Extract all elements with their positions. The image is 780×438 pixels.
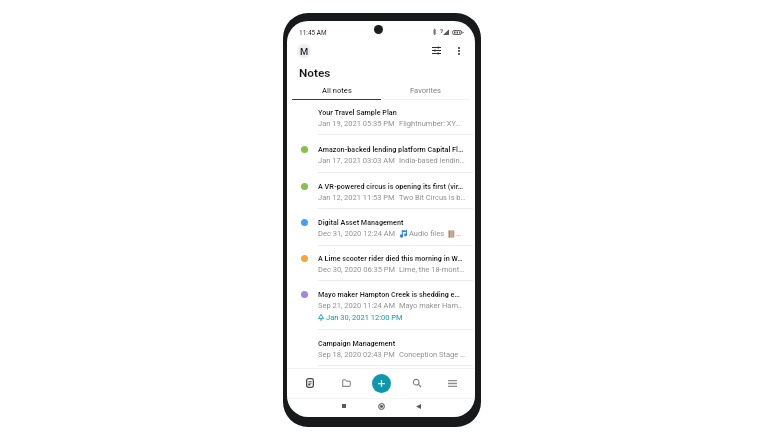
staticText: Dec 31, 2020 12:24 AM	[318, 229, 396, 238]
staticText: Mayo maker Ham…	[399, 301, 463, 310]
staticText: 11:45 AM	[299, 29, 327, 37]
button[interactable]: Favorites	[381, 82, 470, 99]
button[interactable]: Recents	[337, 399, 351, 413]
staticText: Jan 12, 2021 11:53 PM	[318, 193, 395, 202]
staticText: Campaign Management	[318, 339, 465, 347]
button[interactable]: Menu	[444, 375, 460, 391]
staticText: All notes	[322, 86, 352, 95]
button[interactable]: Mayo maker Hampton Creek is shedding e…	[287, 281, 475, 330]
staticText: Sep 21, 2020 11:24 AM	[318, 301, 395, 310]
staticText: Jan 30, 2021 12:00 PM	[326, 313, 403, 322]
staticText: Lime, the 18-mont…	[399, 265, 465, 274]
button[interactable]: Digital Asset Management	[287, 209, 475, 246]
staticText: Flightnumber: XY…	[399, 119, 461, 128]
button[interactable]: Campaign Management	[287, 330, 475, 366]
staticText: Sep 18, 2020 02:43 PM	[318, 350, 395, 359]
staticText: Audio files	[409, 229, 445, 238]
button[interactable]: Home	[374, 399, 388, 413]
staticText: M	[300, 46, 309, 57]
button[interactable]: More options	[451, 43, 467, 59]
staticText: Favorites	[410, 86, 441, 95]
staticText: Notes	[299, 66, 331, 80]
button[interactable]: Add note	[372, 374, 391, 393]
button[interactable]: Search	[409, 375, 425, 391]
button[interactable]: Account	[297, 44, 311, 58]
staticText: Conception Stage …	[399, 350, 465, 359]
staticText: Jan 19, 2021 05:35 PM	[318, 119, 395, 128]
staticText: Two Bit Circus is b…	[399, 193, 465, 202]
button[interactable]: Notes	[302, 375, 318, 391]
staticText: A VR-powered circus is opening its first…	[318, 182, 465, 190]
staticText: India-based lendin…	[399, 156, 465, 165]
button[interactable]: All notes	[292, 82, 381, 99]
staticText: Amazon-backed lending platform Capital F…	[318, 145, 465, 153]
button[interactable]: Folders	[338, 375, 354, 391]
button[interactable]: Back	[411, 399, 425, 413]
button[interactable]: Amazon-backed lending platform Capital F…	[287, 136, 475, 173]
staticText: A Lime scooter rider died this morning i…	[318, 254, 465, 262]
button[interactable]: Sort	[428, 42, 444, 58]
button[interactable]: A VR-powered circus is opening its first…	[287, 173, 475, 209]
button[interactable]: Your Travel Sample Plan	[287, 99, 475, 135]
staticText: Mayo maker Hampton Creek is shedding e…	[318, 290, 465, 298]
button[interactable]: A Lime scooter rider died this morning i…	[287, 245, 475, 281]
staticText: Digital Asset Management	[318, 218, 465, 226]
staticText: Jan 17, 2021 03:03 AM	[318, 156, 395, 165]
staticText: …	[456, 229, 462, 238]
staticText: Dec 30, 2020 06:35 PM	[318, 265, 395, 274]
staticText: Your Travel Sample Plan	[318, 108, 465, 116]
